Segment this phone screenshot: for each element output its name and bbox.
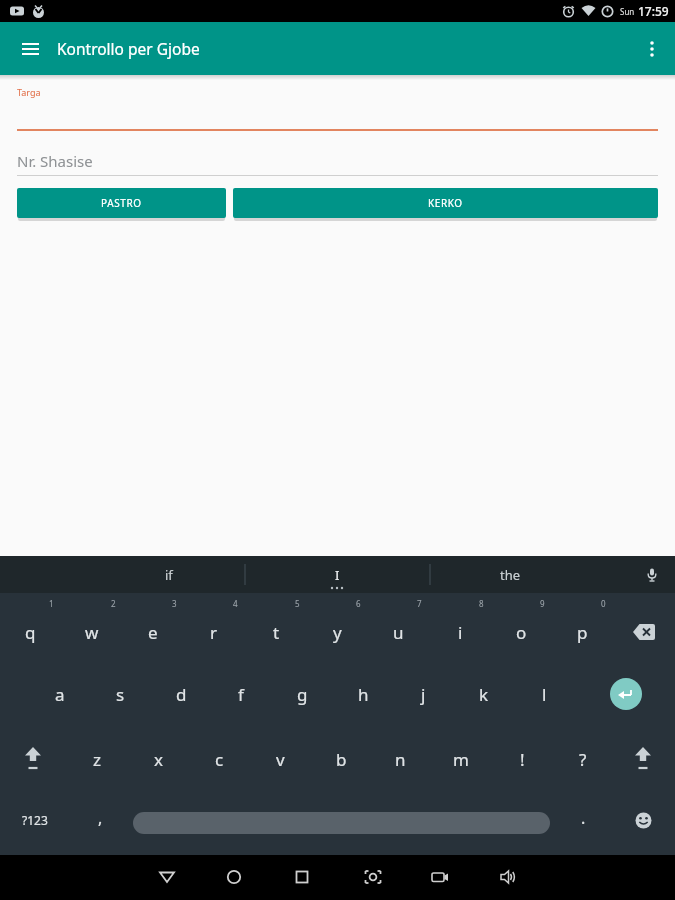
button[interactable] xyxy=(639,562,665,588)
staticText: 1 xyxy=(49,598,54,609)
staticText: l xyxy=(542,683,547,706)
button[interactable] xyxy=(420,857,460,897)
button[interactable]: a xyxy=(32,663,88,725)
staticText: q xyxy=(25,621,36,644)
button[interactable]: . xyxy=(555,787,611,849)
button[interactable]: h xyxy=(335,663,391,725)
staticText: t xyxy=(273,621,280,644)
button[interactable]: p xyxy=(554,601,610,663)
staticText: if xyxy=(165,566,173,584)
button[interactable]: ?123 xyxy=(5,789,65,851)
staticText: y xyxy=(333,621,342,644)
staticText: Nr. Shasise xyxy=(17,151,93,171)
button[interactable]: d xyxy=(153,663,209,725)
button[interactable] xyxy=(13,32,47,66)
button[interactable] xyxy=(353,857,393,897)
staticText: w xyxy=(85,621,99,644)
button[interactable] xyxy=(610,678,642,710)
button[interactable]: r xyxy=(186,601,242,663)
staticText: 2 xyxy=(111,598,116,609)
button[interactable]: x xyxy=(130,728,186,790)
button[interactable] xyxy=(488,857,528,897)
staticText: KERKO xyxy=(428,196,463,210)
staticText: 9 xyxy=(540,598,545,609)
button[interactable]: u xyxy=(370,601,426,663)
button[interactable] xyxy=(5,728,61,790)
staticText: m xyxy=(453,748,469,771)
staticText: 6 xyxy=(356,598,361,609)
button[interactable] xyxy=(147,857,187,897)
button[interactable]: s xyxy=(92,663,148,725)
button[interactable] xyxy=(615,789,671,851)
button[interactable]: ? xyxy=(555,728,611,790)
staticText: p xyxy=(577,621,588,644)
staticText: b xyxy=(336,748,347,771)
button[interactable]: k xyxy=(456,663,512,725)
button[interactable]: z xyxy=(69,728,125,790)
staticText: 3 xyxy=(172,598,177,609)
button[interactable]: w xyxy=(64,601,120,663)
button[interactable] xyxy=(637,34,667,64)
staticText: Targa xyxy=(17,86,41,98)
button[interactable]: the xyxy=(431,556,590,593)
staticText: I xyxy=(335,566,340,584)
button[interactable]: if xyxy=(91,556,246,593)
button[interactable]: I xyxy=(245,556,429,593)
staticText: e xyxy=(148,621,158,644)
button[interactable] xyxy=(133,812,550,834)
button[interactable] xyxy=(214,857,254,897)
staticText: ! xyxy=(520,748,525,771)
button[interactable]: ! xyxy=(494,728,550,790)
button[interactable]: Nr. Shasise xyxy=(17,151,658,171)
staticText: , xyxy=(98,807,103,829)
button[interactable]: c xyxy=(191,728,247,790)
staticText: Sun xyxy=(620,6,635,17)
staticText: 17:59 xyxy=(638,3,669,19)
staticText: u xyxy=(393,621,404,644)
staticText: z xyxy=(93,748,101,771)
staticText: a xyxy=(55,683,65,706)
button[interactable]: m xyxy=(433,728,489,790)
staticText: x xyxy=(154,748,163,771)
button[interactable]: i xyxy=(432,601,488,663)
staticText: i xyxy=(458,621,463,644)
button[interactable] xyxy=(616,601,672,663)
staticText: PASTRO xyxy=(101,196,142,210)
button[interactable] xyxy=(615,728,671,790)
staticText: c xyxy=(215,748,224,771)
button[interactable]: KERKO xyxy=(233,188,658,218)
button[interactable]: b xyxy=(313,728,369,790)
staticText: 4 xyxy=(233,598,238,609)
staticText: k xyxy=(479,683,489,706)
button[interactable]: f xyxy=(213,663,269,725)
staticText: 0 xyxy=(601,598,606,609)
button[interactable]: g xyxy=(274,663,330,725)
staticText: r xyxy=(210,621,218,644)
staticText: j xyxy=(421,683,426,706)
button[interactable]: v xyxy=(252,728,308,790)
staticText: 8 xyxy=(479,598,484,609)
staticText: f xyxy=(238,683,244,706)
staticText: d xyxy=(176,683,187,706)
staticText: 5 xyxy=(295,598,300,609)
button[interactable] xyxy=(282,857,322,897)
staticText: g xyxy=(297,683,308,706)
staticText: Kontrollo per Gjobe xyxy=(57,38,200,59)
button[interactable]: l xyxy=(516,663,572,725)
button[interactable]: j xyxy=(395,663,451,725)
button[interactable]: PASTRO xyxy=(17,188,226,218)
button[interactable]: n xyxy=(372,728,428,790)
staticText: v xyxy=(276,748,285,771)
staticText: s xyxy=(116,683,125,706)
button[interactable]: y xyxy=(309,601,365,663)
button[interactable]: o xyxy=(493,601,549,663)
button[interactable]: , xyxy=(72,787,128,849)
button[interactable]: t xyxy=(248,601,304,663)
staticText: the xyxy=(500,566,521,584)
staticText: ? xyxy=(579,748,587,771)
button[interactable]: q xyxy=(2,601,58,663)
staticText: 7 xyxy=(417,598,422,609)
button[interactable]: e xyxy=(125,601,181,663)
staticText: n xyxy=(395,748,406,771)
